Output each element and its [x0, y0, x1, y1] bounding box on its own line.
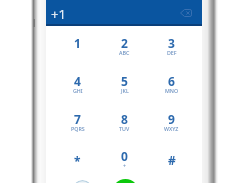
staticText: DEF [167, 49, 177, 56]
staticText: * [74, 153, 81, 169]
staticText: WXYZ [164, 125, 179, 132]
button[interactable]: Call [112, 179, 139, 183]
button[interactable]: 9 [148, 102, 195, 140]
button[interactable]: 3 [148, 26, 195, 64]
staticText: 3 [168, 35, 175, 51]
staticText: 9 [168, 111, 175, 127]
staticText: PQRS [71, 125, 85, 132]
staticText: 6 [168, 73, 175, 89]
staticText: 1 [74, 35, 81, 51]
button[interactable]: Backspace [180, 9, 192, 17]
staticText: MNO [165, 87, 179, 94]
staticText: 7 [74, 111, 81, 127]
button[interactable]: 6 [148, 64, 195, 102]
staticText: # [168, 152, 176, 168]
staticText: 5 [121, 73, 128, 89]
button[interactable]: 7 [54, 102, 101, 140]
button[interactable]: 2 [101, 26, 148, 64]
staticText: 4 [74, 73, 81, 89]
button[interactable]: 5 [101, 64, 148, 102]
staticText: + [123, 162, 127, 169]
button[interactable]: * [54, 139, 101, 177]
staticText: GHI [73, 87, 83, 94]
staticText: +1 [51, 5, 66, 23]
staticText: ABC [119, 49, 130, 56]
staticText: 2 [121, 35, 128, 51]
staticText: JKL [121, 87, 129, 94]
button[interactable]: # [148, 139, 195, 177]
staticText: 8 [121, 111, 128, 127]
button[interactable]: 1 [54, 26, 101, 64]
button[interactable]: 0 [101, 139, 148, 177]
button[interactable]: 8 [101, 102, 148, 140]
staticText: 0 [121, 148, 128, 164]
button[interactable]: Video call [72, 180, 93, 183]
staticText: TUV [119, 125, 130, 132]
button[interactable]: 4 [54, 64, 101, 102]
